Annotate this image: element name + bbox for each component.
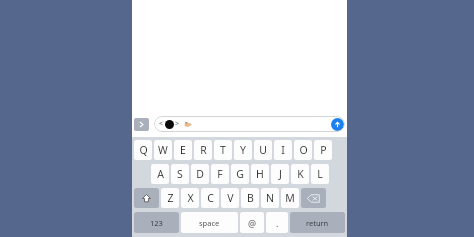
button[interactable]: A — [151, 164, 169, 184]
staticText: M — [285, 191, 295, 205]
staticText: G — [236, 167, 244, 181]
staticText: U — [259, 143, 267, 157]
button[interactable]: P — [314, 140, 332, 160]
staticText: 123 — [150, 218, 163, 228]
staticText: D — [196, 167, 204, 181]
staticText: space — [199, 218, 220, 228]
staticText: R — [200, 143, 207, 157]
staticText: O — [299, 143, 308, 157]
staticText: Y — [240, 143, 246, 157]
staticText: C — [207, 191, 214, 205]
staticText: < — [159, 119, 164, 129]
button[interactable]: C — [201, 188, 219, 208]
button[interactable]: R — [194, 140, 212, 160]
staticText: S — [177, 167, 183, 181]
button[interactable]: F — [211, 164, 229, 184]
button[interactable] — [134, 188, 159, 208]
button[interactable]: O — [294, 140, 312, 160]
button[interactable]: < — [154, 116, 345, 132]
staticText: I — [281, 143, 285, 157]
button[interactable]: M — [281, 188, 299, 208]
button[interactable]: @ — [240, 212, 264, 233]
staticText: return — [306, 218, 329, 228]
staticText: X — [187, 191, 194, 205]
button[interactable]: space — [181, 212, 238, 233]
staticText: . — [276, 217, 279, 229]
button[interactable]: G — [231, 164, 249, 184]
button[interactable] — [301, 188, 326, 208]
button[interactable]: D — [191, 164, 209, 184]
button[interactable]: H — [251, 164, 269, 184]
button[interactable]: . — [266, 212, 288, 233]
staticText: Q — [139, 143, 148, 157]
staticText: F — [217, 167, 223, 181]
button[interactable]: Z — [161, 188, 179, 208]
button[interactable]: Send — [331, 118, 344, 131]
button[interactable]: J — [271, 164, 289, 184]
staticText: E — [180, 143, 186, 157]
button[interactable]: E — [174, 140, 192, 160]
button[interactable]: B — [241, 188, 259, 208]
button[interactable]: K — [291, 164, 309, 184]
staticText: B — [247, 191, 254, 205]
button[interactable]: Q — [134, 140, 152, 160]
staticText: N — [266, 191, 274, 205]
staticText: > — [175, 119, 180, 129]
button[interactable]: U — [254, 140, 272, 160]
staticText: P — [320, 143, 327, 157]
button[interactable]: X — [181, 188, 199, 208]
button[interactable]: T — [214, 140, 232, 160]
button[interactable]: 123 — [134, 212, 179, 233]
button[interactable]: S — [171, 164, 189, 184]
staticText: T — [220, 143, 226, 157]
staticText: @ — [248, 217, 257, 229]
staticText: V — [227, 191, 234, 205]
staticText: Z — [167, 191, 174, 205]
staticText: H — [256, 167, 264, 181]
staticText: L — [317, 167, 323, 181]
staticText: K — [297, 167, 304, 181]
staticText: J — [279, 167, 282, 181]
button[interactable]: I — [274, 140, 292, 160]
button[interactable]: return — [290, 212, 345, 233]
button[interactable]: Expand app drawer — [134, 118, 149, 131]
button[interactable]: L — [311, 164, 329, 184]
button[interactable]: N — [261, 188, 279, 208]
button[interactable]: W — [154, 140, 172, 160]
staticText: W — [158, 143, 168, 157]
button[interactable]: V — [221, 188, 239, 208]
button[interactable]: Y — [234, 140, 252, 160]
staticText: A — [157, 167, 164, 181]
